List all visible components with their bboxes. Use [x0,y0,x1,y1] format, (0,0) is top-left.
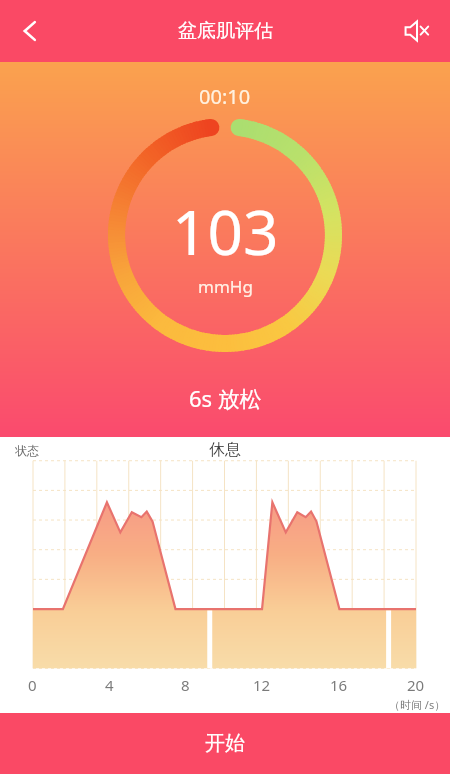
button[interactable]: 开始 [0,713,450,774]
staticText: 20 [407,675,425,695]
staticText: 状态 [15,443,39,458]
staticText: 开始 [205,731,245,756]
staticText: （时间 /s） [389,697,446,712]
staticText: 盆底肌评估 [178,19,273,43]
staticText: 休息 [209,440,241,460]
staticText: 4 [105,675,114,695]
staticText: 6s 放松 [189,383,262,413]
button[interactable]: Mute sound [394,8,440,54]
staticText: 00:10 [199,83,251,110]
staticText: 8 [181,675,190,695]
staticText: 0 [28,675,37,695]
staticText: 12 [253,675,271,695]
staticText: 16 [330,675,348,695]
staticText: 103 [172,189,279,273]
staticText: mmHg [198,275,253,298]
button[interactable]: Back [6,7,54,55]
